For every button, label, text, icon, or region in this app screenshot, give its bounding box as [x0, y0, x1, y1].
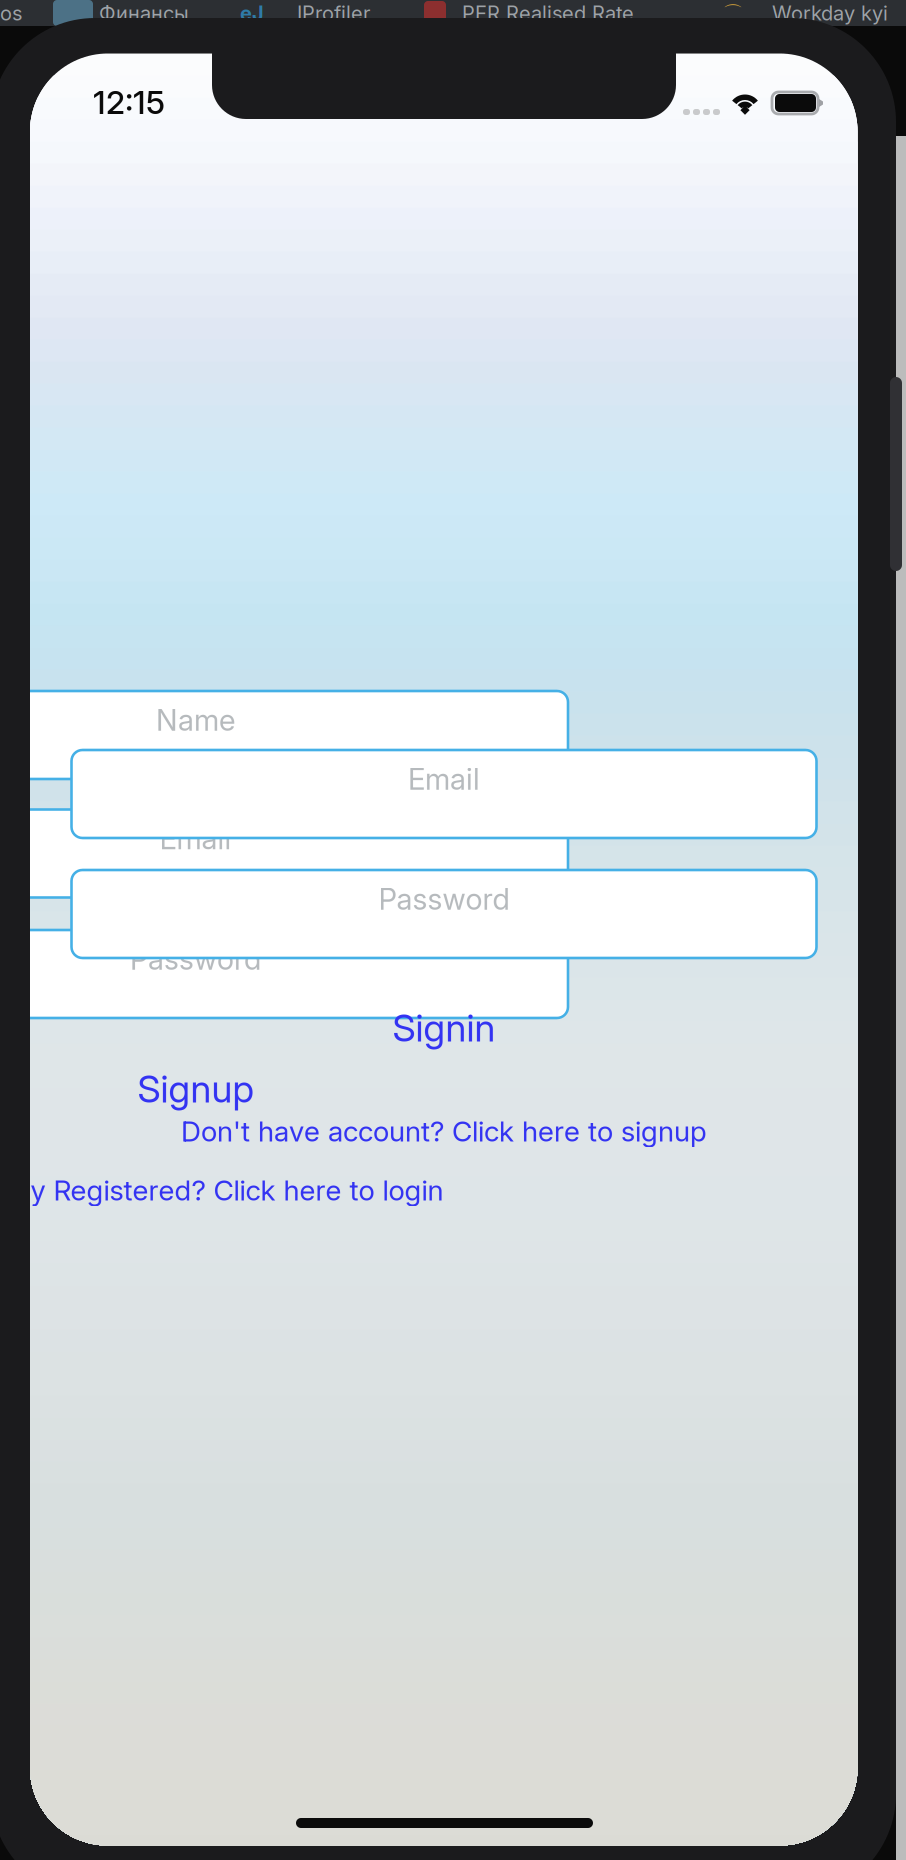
staticText: Email [408, 761, 480, 797]
staticText: Email [159, 821, 231, 856]
button[interactable]: Already Registered? Click here to login [0, 1174, 568, 1206]
staticText: Signup [137, 1066, 253, 1112]
staticText: Name [156, 702, 235, 738]
staticText: ⌒ [723, 1, 743, 26]
staticText: Already Registered? Click here to login [0, 1173, 443, 1207]
staticText: Password [130, 941, 261, 977]
staticText: Password [378, 881, 509, 917]
staticText: PER Realised Rate [462, 1, 634, 25]
staticText: os [0, 1, 22, 25]
staticText: Финансы [99, 1, 189, 25]
staticText: Signin [392, 1005, 495, 1051]
staticText: 12:15 [93, 83, 165, 122]
staticText: eJ [240, 1, 264, 25]
button[interactable]: Don't have account? Click here to signup [71, 1115, 816, 1147]
button[interactable]: Signup [0, 1068, 568, 1110]
staticText: Workday kyi [772, 1, 888, 25]
button[interactable]: Signin [71, 1007, 816, 1049]
staticText: Don't have account? Click here to signup [181, 1114, 707, 1148]
staticText: IProfiler [297, 1, 370, 25]
